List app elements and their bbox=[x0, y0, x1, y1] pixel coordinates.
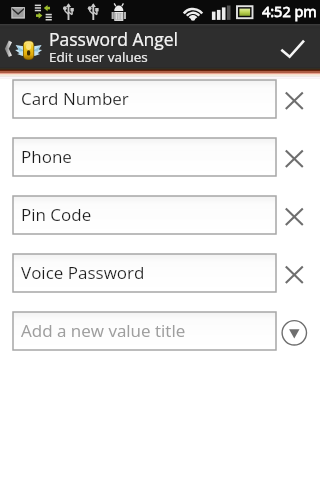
staticText: Voice Password bbox=[21, 261, 145, 284]
staticText: Add a new value title bbox=[21, 319, 186, 342]
staticText: 4:52 pm bbox=[262, 2, 317, 22]
button[interactable]: Remove value bbox=[277, 138, 313, 176]
button[interactable]: Password Angel bbox=[0, 24, 200, 68]
staticText: Phone bbox=[21, 145, 72, 168]
button[interactable]: Remove value bbox=[277, 196, 313, 234]
staticText: Password Angel bbox=[49, 27, 178, 51]
button[interactable]: Phone bbox=[13, 138, 276, 176]
button[interactable]: Pin Code bbox=[13, 196, 276, 234]
button[interactable]: Add a new value title bbox=[13, 312, 276, 350]
staticText: Card Number bbox=[21, 87, 129, 110]
staticText: Pin Code bbox=[21, 203, 92, 226]
staticText: Edit user values bbox=[49, 48, 148, 66]
button[interactable]: Voice Password bbox=[13, 254, 276, 292]
button[interactable]: Add value bbox=[277, 312, 313, 350]
button[interactable]: Card Number bbox=[13, 80, 276, 118]
button[interactable]: Remove value bbox=[277, 254, 313, 292]
button[interactable]: Remove value bbox=[277, 80, 313, 118]
button[interactable]: Done bbox=[272, 24, 320, 68]
